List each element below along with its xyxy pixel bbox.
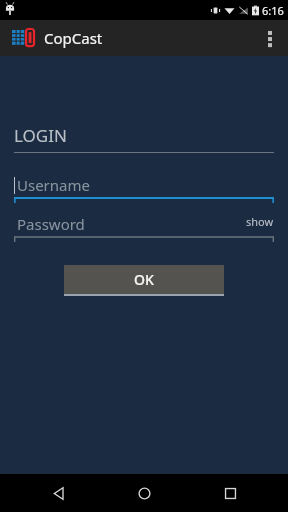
button[interactable]: Password [14, 211, 274, 237]
button[interactable]: Home [116, 474, 172, 512]
staticText: Username [17, 175, 90, 195]
button[interactable]: Back [30, 474, 86, 512]
button[interactable]: OK [64, 265, 224, 296]
button[interactable]: Username [14, 172, 274, 198]
staticText: CopCast [44, 28, 103, 48]
staticText: LOGIN [14, 124, 67, 147]
staticText: Password [17, 214, 85, 234]
button[interactable]: Recent apps [202, 474, 258, 512]
button[interactable]: More options [252, 20, 288, 56]
staticText: OK [134, 270, 154, 289]
button[interactable]: show [246, 214, 274, 229]
staticText: 6:16 [262, 3, 284, 18]
